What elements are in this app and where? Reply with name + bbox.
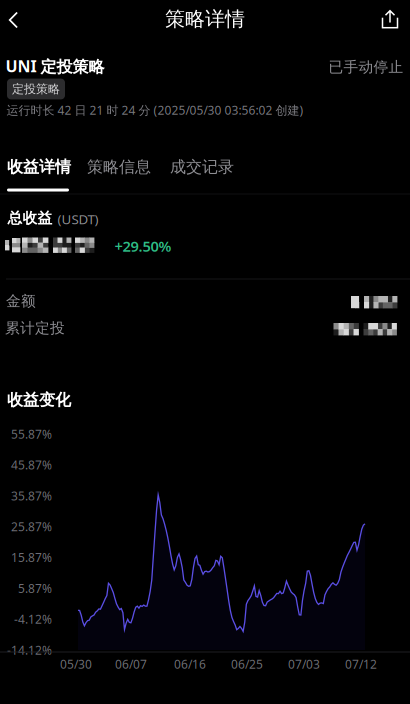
staticText: -14.12% <box>7 642 52 658</box>
staticText: UNI 定投策略 <box>5 55 104 77</box>
staticText: 5.87% <box>18 580 52 596</box>
staticText: 07/12 <box>345 656 377 672</box>
staticText: 运行时长 42 日 21 时 24 分 (2025/05/30 03:56:02… <box>6 102 303 118</box>
staticText: 成交记录 <box>170 157 234 177</box>
staticText: 05/30 <box>60 656 92 672</box>
staticText: 金额 <box>6 292 36 310</box>
button[interactable]: Share <box>370 0 410 38</box>
staticText: +29.50% <box>114 236 171 256</box>
staticText: 06/07 <box>115 656 147 672</box>
staticText: 策略信息 <box>87 157 151 177</box>
staticText: 06/16 <box>174 656 206 672</box>
staticText: 25.87% <box>11 519 52 534</box>
staticText: 策略详情 <box>165 7 245 31</box>
staticText: 07/03 <box>288 656 320 672</box>
staticText: 总收益 <box>7 209 52 227</box>
staticText: 55.87% <box>11 426 52 442</box>
staticText: 已手动停止 <box>328 58 403 76</box>
staticText: 45.87% <box>11 457 52 473</box>
button[interactable]: 策略信息 <box>86 154 152 180</box>
staticText: (USDT) <box>57 210 98 228</box>
staticText: 06/25 <box>231 656 263 672</box>
staticText: 收益详情 <box>7 157 71 177</box>
staticText: 累计定投 <box>5 319 65 337</box>
staticText: 35.87% <box>11 488 52 504</box>
button[interactable]: 收益详情 <box>6 154 72 180</box>
staticText: 收益变化 <box>7 390 71 410</box>
button[interactable]: Back <box>0 1 33 39</box>
staticText: 定投策略 <box>12 82 60 96</box>
button[interactable]: 成交记录 <box>169 154 235 180</box>
staticText: -4.12% <box>14 611 52 627</box>
staticText: 15.87% <box>11 549 52 565</box>
